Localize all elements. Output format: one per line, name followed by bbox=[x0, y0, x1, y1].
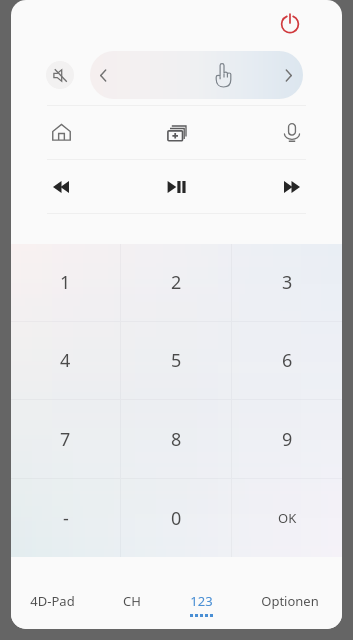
staticText: 6 bbox=[282, 348, 293, 373]
button[interactable]: 7 bbox=[11, 400, 120, 478]
button[interactable]: 9 bbox=[232, 400, 342, 478]
button[interactable]: 4 bbox=[11, 322, 120, 399]
staticText: 9 bbox=[282, 427, 293, 452]
button[interactable]: 1 bbox=[11, 244, 120, 321]
staticText: OK bbox=[278, 509, 297, 527]
button[interactable]: 6 bbox=[232, 322, 342, 399]
button[interactable]: Mute bbox=[46, 61, 74, 89]
button[interactable]: 3 bbox=[232, 244, 342, 321]
button[interactable]: Touchpad bbox=[117, 51, 273, 99]
button[interactable]: Optionen bbox=[261, 557, 319, 629]
button[interactable]: Rewind bbox=[47, 160, 75, 213]
staticText: 7 bbox=[60, 427, 71, 452]
staticText: - bbox=[63, 506, 69, 531]
button[interactable]: 8 bbox=[121, 400, 231, 478]
button[interactable]: 0 bbox=[121, 479, 231, 557]
button[interactable]: Fast forward bbox=[278, 160, 306, 213]
staticText: CH bbox=[123, 592, 141, 610]
button[interactable]: Voice bbox=[278, 106, 306, 159]
staticText: 123 bbox=[190, 592, 213, 610]
button[interactable]: 123 bbox=[190, 557, 213, 629]
button[interactable]: 5 bbox=[121, 322, 231, 399]
staticText: 5 bbox=[171, 348, 182, 373]
staticText: 4 bbox=[60, 348, 71, 373]
button[interactable]: CH bbox=[123, 557, 141, 629]
button[interactable]: 4D-Pad bbox=[30, 557, 75, 629]
staticText: 2 bbox=[171, 270, 182, 295]
button[interactable]: OK bbox=[232, 479, 342, 557]
staticText: 0 bbox=[171, 506, 182, 531]
button[interactable]: Volume down bbox=[90, 51, 117, 99]
button[interactable]: Power bbox=[275, 8, 305, 38]
button[interactable]: Add bbox=[163, 106, 191, 159]
button[interactable]: 2 bbox=[121, 244, 231, 321]
staticText: 4D-Pad bbox=[30, 592, 75, 610]
staticText: 1 bbox=[60, 270, 71, 295]
staticText: 8 bbox=[171, 427, 182, 452]
button[interactable]: - bbox=[11, 479, 120, 557]
button[interactable]: Home bbox=[47, 106, 75, 159]
button[interactable]: Volume up bbox=[273, 51, 303, 99]
staticText: 3 bbox=[282, 270, 293, 295]
staticText: Optionen bbox=[261, 592, 319, 610]
button[interactable]: Play pause bbox=[163, 160, 191, 213]
